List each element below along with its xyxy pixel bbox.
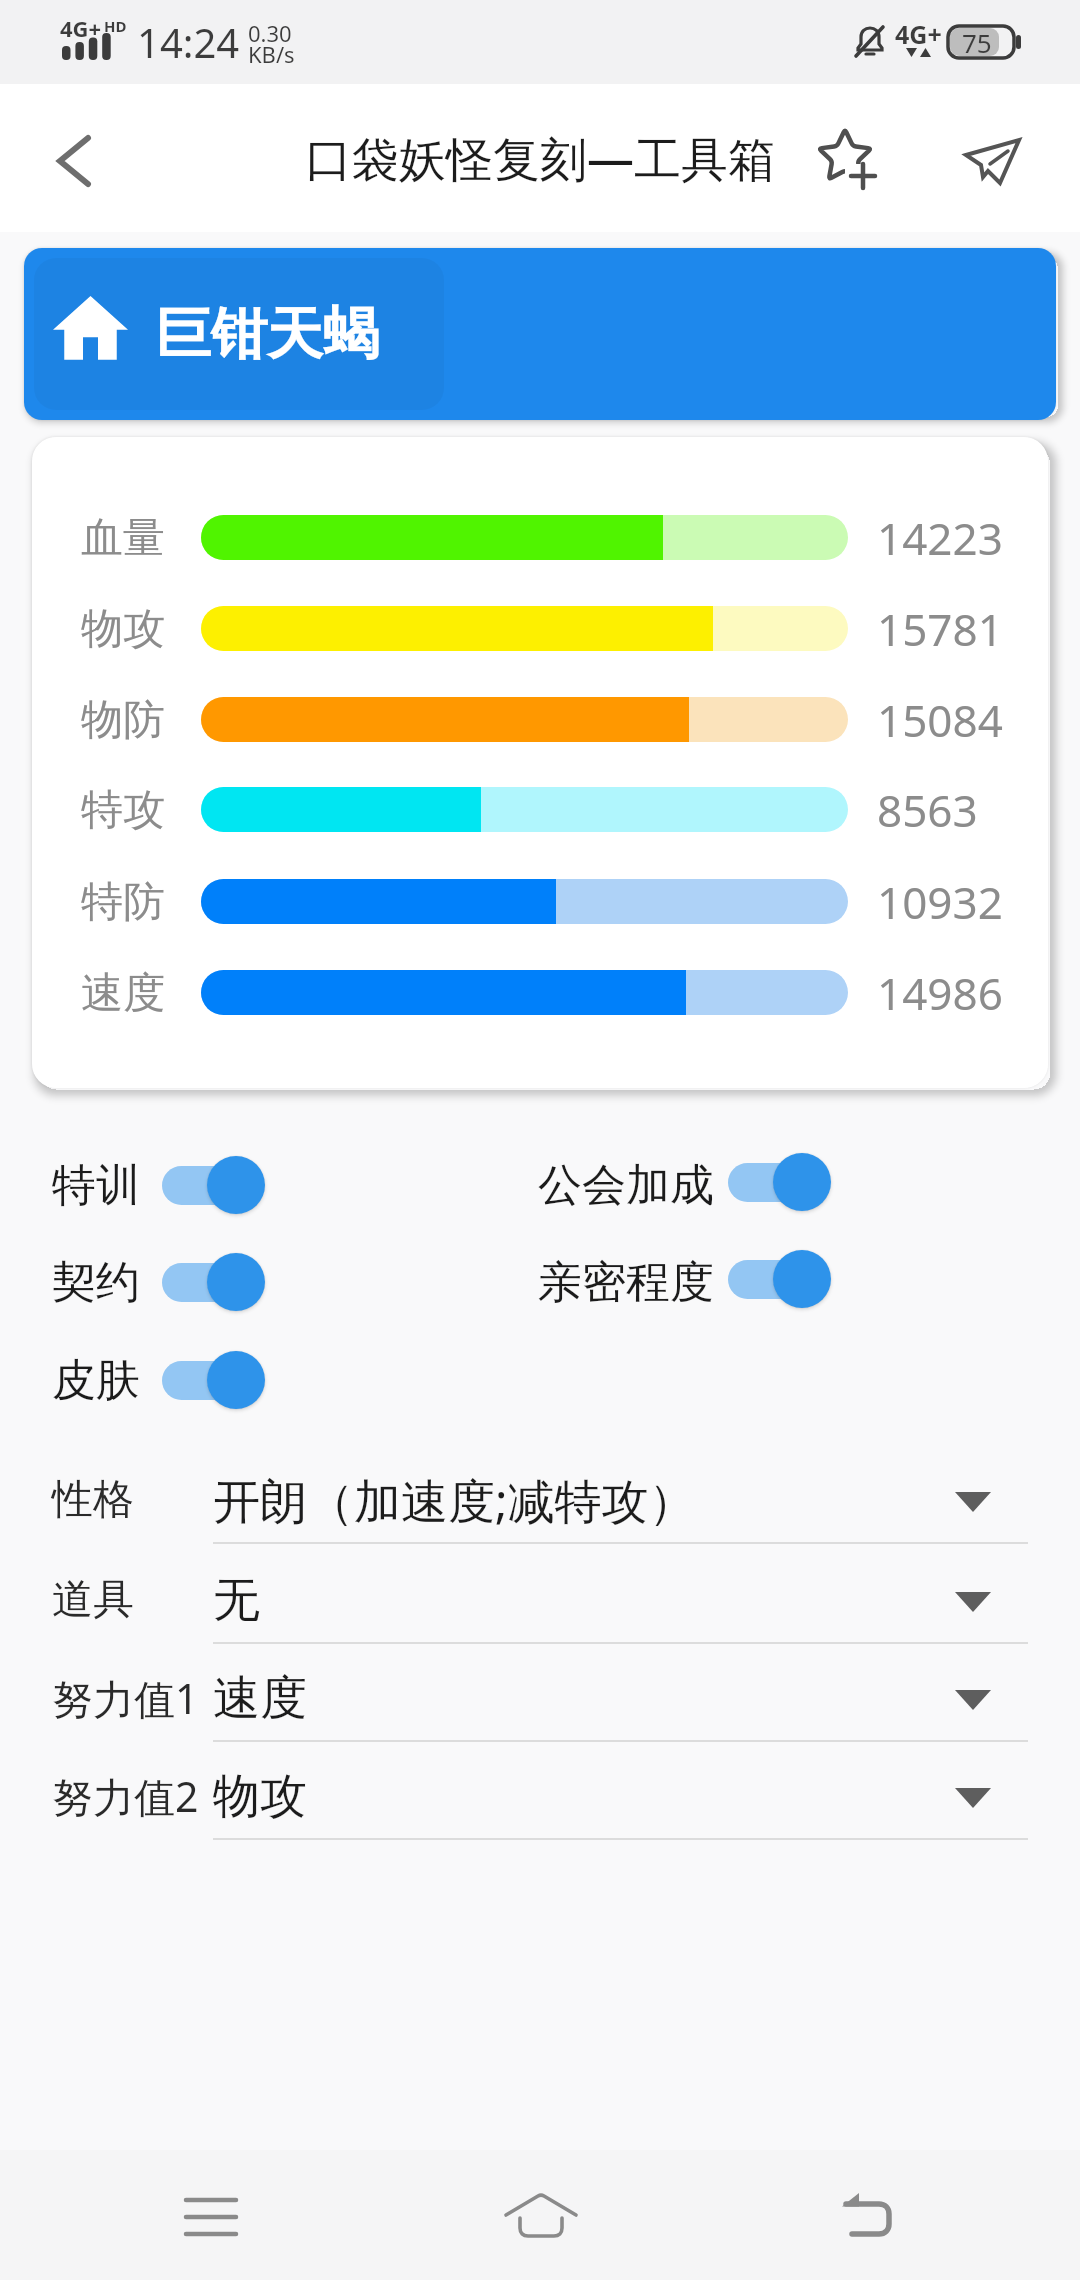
staticText: 公会加成 [538, 1158, 714, 1213]
button[interactable] [815, 130, 881, 196]
staticText: 努力值2 [52, 1768, 199, 1824]
button[interactable] [40, 1748, 1040, 1844]
staticText: 开朗（加速度;减特攻） [213, 1468, 696, 1532]
button[interactable] [40, 1552, 1040, 1648]
staticText: 0.30 [248, 18, 292, 48]
staticText: 75 [962, 25, 992, 60]
staticText: 15084 [877, 690, 1003, 750]
button[interactable] [962, 134, 1022, 188]
staticText: HD [104, 16, 127, 36]
staticText: 口袋妖怪复刻—工具箱 [305, 126, 775, 190]
staticText: 巨钳天蝎 [155, 299, 379, 370]
staticText: 契约 [52, 1255, 140, 1310]
staticText: 14986 [877, 963, 1003, 1023]
button[interactable] [728, 1250, 831, 1308]
staticText: 皮肤 [52, 1353, 140, 1408]
staticText: 14:24 [137, 15, 240, 69]
button[interactable] [40, 1650, 1040, 1746]
staticText: 速度 [213, 1669, 307, 1728]
staticText: 血量 [81, 512, 165, 565]
button[interactable] [162, 1351, 265, 1409]
button[interactable] [728, 1153, 831, 1211]
staticText: 道具 [52, 1574, 134, 1626]
staticText: KB/s [248, 39, 295, 69]
button[interactable] [40, 1452, 1040, 1548]
staticText: 努力值1 [52, 1670, 199, 1726]
button[interactable] [162, 1253, 265, 1311]
button[interactable]: 巨钳天蝎 [24, 248, 1056, 420]
staticText: 性格 [52, 1474, 134, 1526]
button[interactable] [184, 2196, 240, 2240]
button[interactable] [503, 2190, 579, 2242]
staticText: 特防 [81, 876, 165, 929]
staticText: 4G+ [60, 13, 102, 43]
staticText: 10932 [877, 872, 1003, 932]
button[interactable] [840, 2188, 896, 2240]
button[interactable] [162, 1156, 265, 1214]
staticText: 8563 [877, 780, 978, 840]
staticText: 物防 [81, 694, 165, 747]
staticText: 15781 [877, 599, 1003, 659]
staticText: 亲密程度 [538, 1255, 714, 1310]
staticText: 速度 [81, 967, 165, 1020]
staticText: 特训 [52, 1158, 140, 1213]
staticText: 物攻 [81, 603, 165, 656]
staticText: 物攻 [213, 1767, 307, 1826]
staticText: 特攻 [81, 784, 165, 837]
staticText: 无 [213, 1571, 260, 1630]
button[interactable] [48, 134, 98, 194]
staticText: 14223 [877, 508, 1003, 568]
staticText: 4G+ [895, 17, 942, 51]
